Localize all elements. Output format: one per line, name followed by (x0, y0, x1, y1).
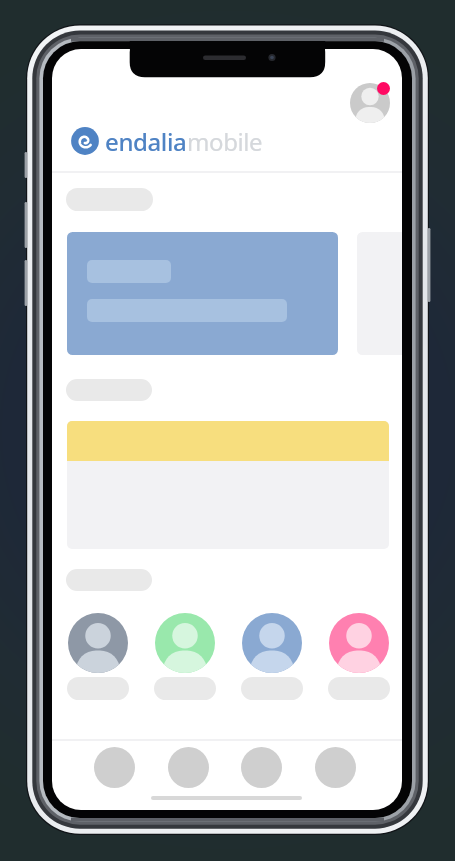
button[interactable] (67, 421, 389, 549)
staticText: endalia (105, 125, 187, 158)
staticText: mobile (187, 125, 263, 158)
button[interactable]: Nav 3 (233, 739, 289, 795)
button[interactable]: Nav 4 (307, 739, 363, 795)
button[interactable]: Contact 4 (329, 613, 389, 673)
button[interactable]: Contact 3 (242, 613, 302, 673)
button[interactable]: Nav 1 (86, 739, 142, 795)
button[interactable]: Nav 2 (160, 739, 216, 795)
button[interactable]: Profile (350, 83, 390, 123)
button[interactable] (67, 232, 338, 355)
button[interactable]: Contact 1 (68, 613, 128, 673)
button[interactable]: endalia (71, 120, 263, 162)
button[interactable]: Contact 2 (155, 613, 215, 673)
